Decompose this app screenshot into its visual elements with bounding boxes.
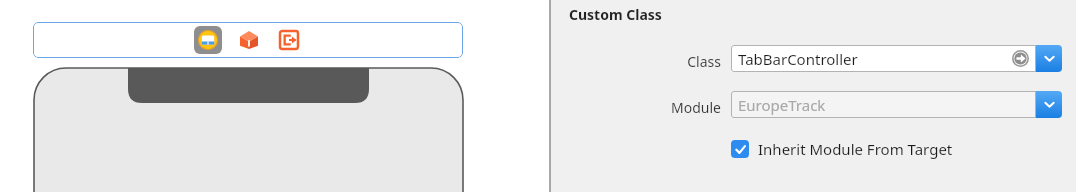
button[interactable]: Class options — [1036, 45, 1062, 72]
staticText: Inherit Module From Target — [758, 139, 953, 159]
button[interactable]: Module options — [1036, 91, 1062, 118]
staticText: Custom Class — [569, 5, 662, 24]
staticText: EuropeTrack — [738, 95, 826, 115]
button[interactable]: First Responder — [236, 27, 262, 53]
button[interactable]: Exit — [276, 27, 302, 53]
staticText: TabBarController — [738, 49, 858, 69]
button[interactable]: EuropeTrack — [731, 91, 1036, 118]
button[interactable]: Inherit Module From Target — [731, 136, 953, 162]
staticText: Class — [671, 52, 721, 71]
button[interactable]: TabBarController — [731, 45, 1036, 72]
staticText: Module — [655, 98, 721, 117]
button[interactable]: View Controller — [194, 26, 222, 54]
